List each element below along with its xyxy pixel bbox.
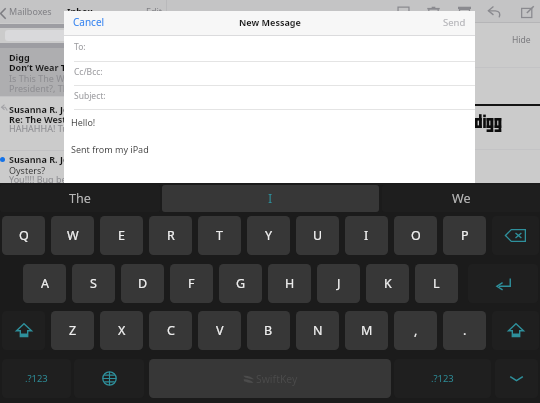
button[interactable]: H (268, 264, 311, 303)
staticText: E (118, 227, 125, 244)
staticText: HAHAHHA! Tuesday (9, 122, 93, 134)
button[interactable] (0, 3, 60, 20)
staticText: Digg (9, 51, 30, 63)
staticText: V (216, 322, 224, 339)
staticText: Y (265, 227, 273, 244)
button[interactable]: O (394, 216, 437, 255)
staticText: Don’t Wear This Shirt (9, 61, 103, 73)
button[interactable]: . (443, 311, 486, 350)
staticText: .?123 (25, 372, 48, 385)
button[interactable]: A (23, 264, 66, 303)
button[interactable] (438, 11, 471, 35)
staticText: New Message (239, 16, 301, 28)
button[interactable]: M (345, 311, 388, 350)
staticText: K (384, 275, 392, 292)
button[interactable]: Change language (74, 359, 144, 398)
staticText: Re: The West Loop (9, 113, 91, 125)
button[interactable]: C (149, 311, 192, 350)
button[interactable]: Shift (2, 311, 45, 350)
button[interactable]: E (100, 216, 143, 255)
button[interactable]: V (198, 311, 241, 350)
button[interactable] (0, 97, 166, 150)
button[interactable]: I (345, 216, 388, 255)
button[interactable]: Q (2, 216, 45, 255)
staticText: We (452, 190, 471, 207)
staticText: Send (443, 16, 466, 29)
staticText: The (69, 190, 91, 207)
button[interactable]: Backspace (492, 216, 539, 255)
button[interactable]: Y (247, 216, 290, 255)
staticText: A (41, 275, 49, 292)
button[interactable]: Flag (393, 0, 414, 23)
button[interactable] (234, 11, 306, 35)
button[interactable]: Enter (468, 264, 538, 303)
other: Change language (102, 371, 117, 386)
staticText: U (313, 227, 323, 244)
staticText: I (268, 190, 273, 207)
button[interactable]: Delete (423, 0, 444, 23)
button[interactable] (64, 62, 475, 86)
button[interactable]: .?123 (394, 359, 491, 398)
button[interactable]: P (443, 216, 486, 255)
staticText: H (285, 275, 295, 292)
staticText: I (364, 227, 369, 244)
button[interactable]: Hide (505, 33, 537, 47)
button[interactable]: J (317, 264, 360, 303)
button[interactable]: .?123 (2, 359, 71, 398)
staticText: Hide (512, 34, 531, 46)
other: Hide keyboard (509, 374, 524, 383)
staticText: . (463, 322, 467, 339)
other: Shift (16, 323, 32, 338)
button[interactable]: I (162, 185, 379, 212)
button[interactable] (64, 86, 475, 110)
button[interactable]: L (415, 264, 458, 303)
staticText: To: (74, 41, 86, 53)
staticText: Inbox (67, 5, 93, 17)
button[interactable] (5, 30, 161, 41)
staticText: Subject: (74, 90, 106, 102)
staticText: Cancel (73, 15, 105, 29)
button[interactable]: D (121, 264, 164, 303)
button[interactable] (0, 151, 166, 183)
button[interactable]: Reply (484, 0, 505, 23)
other: Shift (508, 323, 524, 338)
staticText: Oysters? (9, 164, 46, 176)
button[interactable]: X (100, 311, 143, 350)
button[interactable]: S (72, 264, 115, 303)
staticText: .?123 (431, 372, 454, 385)
button[interactable]: N (296, 311, 339, 350)
button[interactable]: W (51, 216, 94, 255)
staticText: Mailboxes (9, 5, 52, 17)
staticText: G (236, 275, 246, 292)
button[interactable]: , (394, 311, 437, 350)
staticText: O (411, 227, 421, 244)
button[interactable]: Compose (517, 0, 538, 23)
button[interactable]: F (170, 264, 213, 303)
button[interactable]: R (149, 216, 192, 255)
button[interactable]: Z (51, 311, 94, 350)
button[interactable]: Hide keyboard (495, 359, 538, 398)
button[interactable] (68, 11, 106, 35)
staticText: P (461, 227, 469, 244)
button[interactable]: The (0, 185, 160, 212)
staticText: Hello! (71, 116, 96, 128)
button[interactable]: K (366, 264, 409, 303)
button[interactable]: T (198, 216, 241, 255)
button[interactable]: We (382, 185, 540, 212)
button[interactable]: B (247, 311, 290, 350)
button[interactable]: U (296, 216, 339, 255)
staticText: M (361, 322, 373, 339)
staticText: Cc/Bcc: (74, 66, 103, 78)
staticText: Sent from my iPad (71, 143, 149, 155)
button[interactable] (0, 48, 166, 96)
button[interactable]: G (219, 264, 262, 303)
staticText: W (67, 227, 79, 244)
button[interactable] (64, 37, 475, 61)
staticText: X (118, 322, 126, 339)
staticText: C (167, 322, 175, 339)
staticText: Q (19, 227, 29, 244)
button[interactable]: Shift (492, 311, 539, 350)
button[interactable]: Archive (454, 0, 475, 23)
other: Enter (496, 277, 511, 291)
